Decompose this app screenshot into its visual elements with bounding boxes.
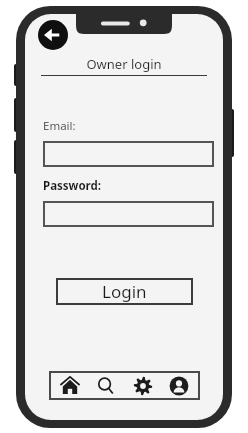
staticText: Owner login [86, 55, 162, 73]
button[interactable]: Settings [128, 372, 158, 399]
button[interactable]: Login [56, 278, 193, 305]
staticText: Email: [43, 118, 76, 134]
button[interactable]: Back [38, 20, 68, 50]
staticText: Password: [43, 178, 102, 194]
button[interactable]: Email field [43, 141, 214, 167]
staticText: Login [102, 280, 147, 303]
button[interactable]: Password field [43, 201, 214, 227]
button[interactable]: Profile [164, 372, 194, 399]
button[interactable]: Search [91, 372, 121, 399]
button[interactable]: Home [55, 372, 85, 399]
